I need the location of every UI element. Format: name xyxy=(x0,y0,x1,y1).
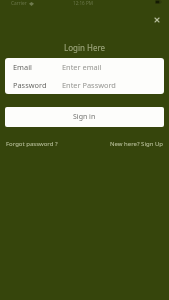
staticText: Enter Password xyxy=(62,80,116,90)
staticText: New here? Sign Up xyxy=(110,140,163,148)
button[interactable]: Email xyxy=(5,58,164,76)
staticText: 12:16 PM xyxy=(73,0,93,6)
staticText: Sign in xyxy=(73,112,96,122)
button[interactable]: Close xyxy=(149,12,165,28)
staticText: Carrier xyxy=(11,0,27,7)
staticText: Forgot password ? xyxy=(6,140,58,148)
staticText: Enter email xyxy=(62,62,102,72)
button[interactable]: New here? Sign Up xyxy=(110,140,163,148)
staticText: Password xyxy=(13,80,47,90)
button[interactable]: Sign in xyxy=(5,107,164,127)
staticText: Login Here xyxy=(64,42,106,53)
button[interactable]: Password xyxy=(5,76,164,94)
button[interactable]: Forgot password ? xyxy=(6,140,58,148)
staticText: Email xyxy=(13,62,32,72)
